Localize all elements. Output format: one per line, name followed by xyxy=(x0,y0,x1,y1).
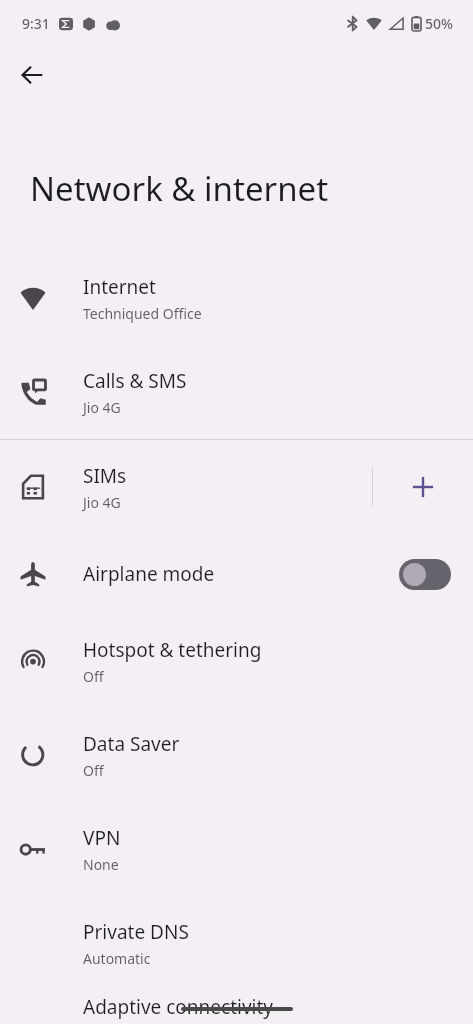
button[interactable]: Add SIM xyxy=(373,440,473,534)
button[interactable]: Data Saver xyxy=(0,708,473,802)
button[interactable]: Private DNS xyxy=(0,896,473,990)
staticText: Off xyxy=(83,761,104,780)
staticText: Data Saver xyxy=(83,731,180,757)
button[interactable]: Airplane mode toggle xyxy=(399,559,451,590)
staticText: None xyxy=(83,855,119,874)
staticText: Techniqued Office xyxy=(83,304,202,323)
button[interactable]: Airplane mode xyxy=(0,534,473,614)
button[interactable]: Internet xyxy=(0,251,473,345)
staticText: Automatic xyxy=(83,949,151,968)
button[interactable]: VPN xyxy=(0,802,473,896)
button[interactable]: Calls & SMS xyxy=(0,345,473,439)
staticText: Private DNS xyxy=(83,919,189,945)
staticText: Calls & SMS xyxy=(83,368,187,394)
staticText: Airplane mode xyxy=(83,561,215,587)
staticText: Jio 4G xyxy=(83,493,121,512)
staticText: Hotspot & tethering xyxy=(83,637,262,663)
button[interactable]: Hotspot & tethering xyxy=(0,614,473,708)
staticText: Internet xyxy=(83,274,156,300)
staticText: Jio 4G xyxy=(83,398,121,417)
button[interactable]: Back xyxy=(10,53,54,97)
staticText: Off xyxy=(83,667,104,686)
staticText: Network & internet xyxy=(30,166,329,211)
staticText: VPN xyxy=(83,825,121,851)
staticText: SIMs xyxy=(83,463,127,489)
staticText: 9:31 xyxy=(22,14,50,33)
button[interactable]: SIMs xyxy=(0,440,372,534)
button[interactable]: Adaptive connectivity xyxy=(0,990,473,1024)
staticText: 50% xyxy=(425,14,453,33)
staticText: Adaptive connectivity xyxy=(83,994,274,1020)
